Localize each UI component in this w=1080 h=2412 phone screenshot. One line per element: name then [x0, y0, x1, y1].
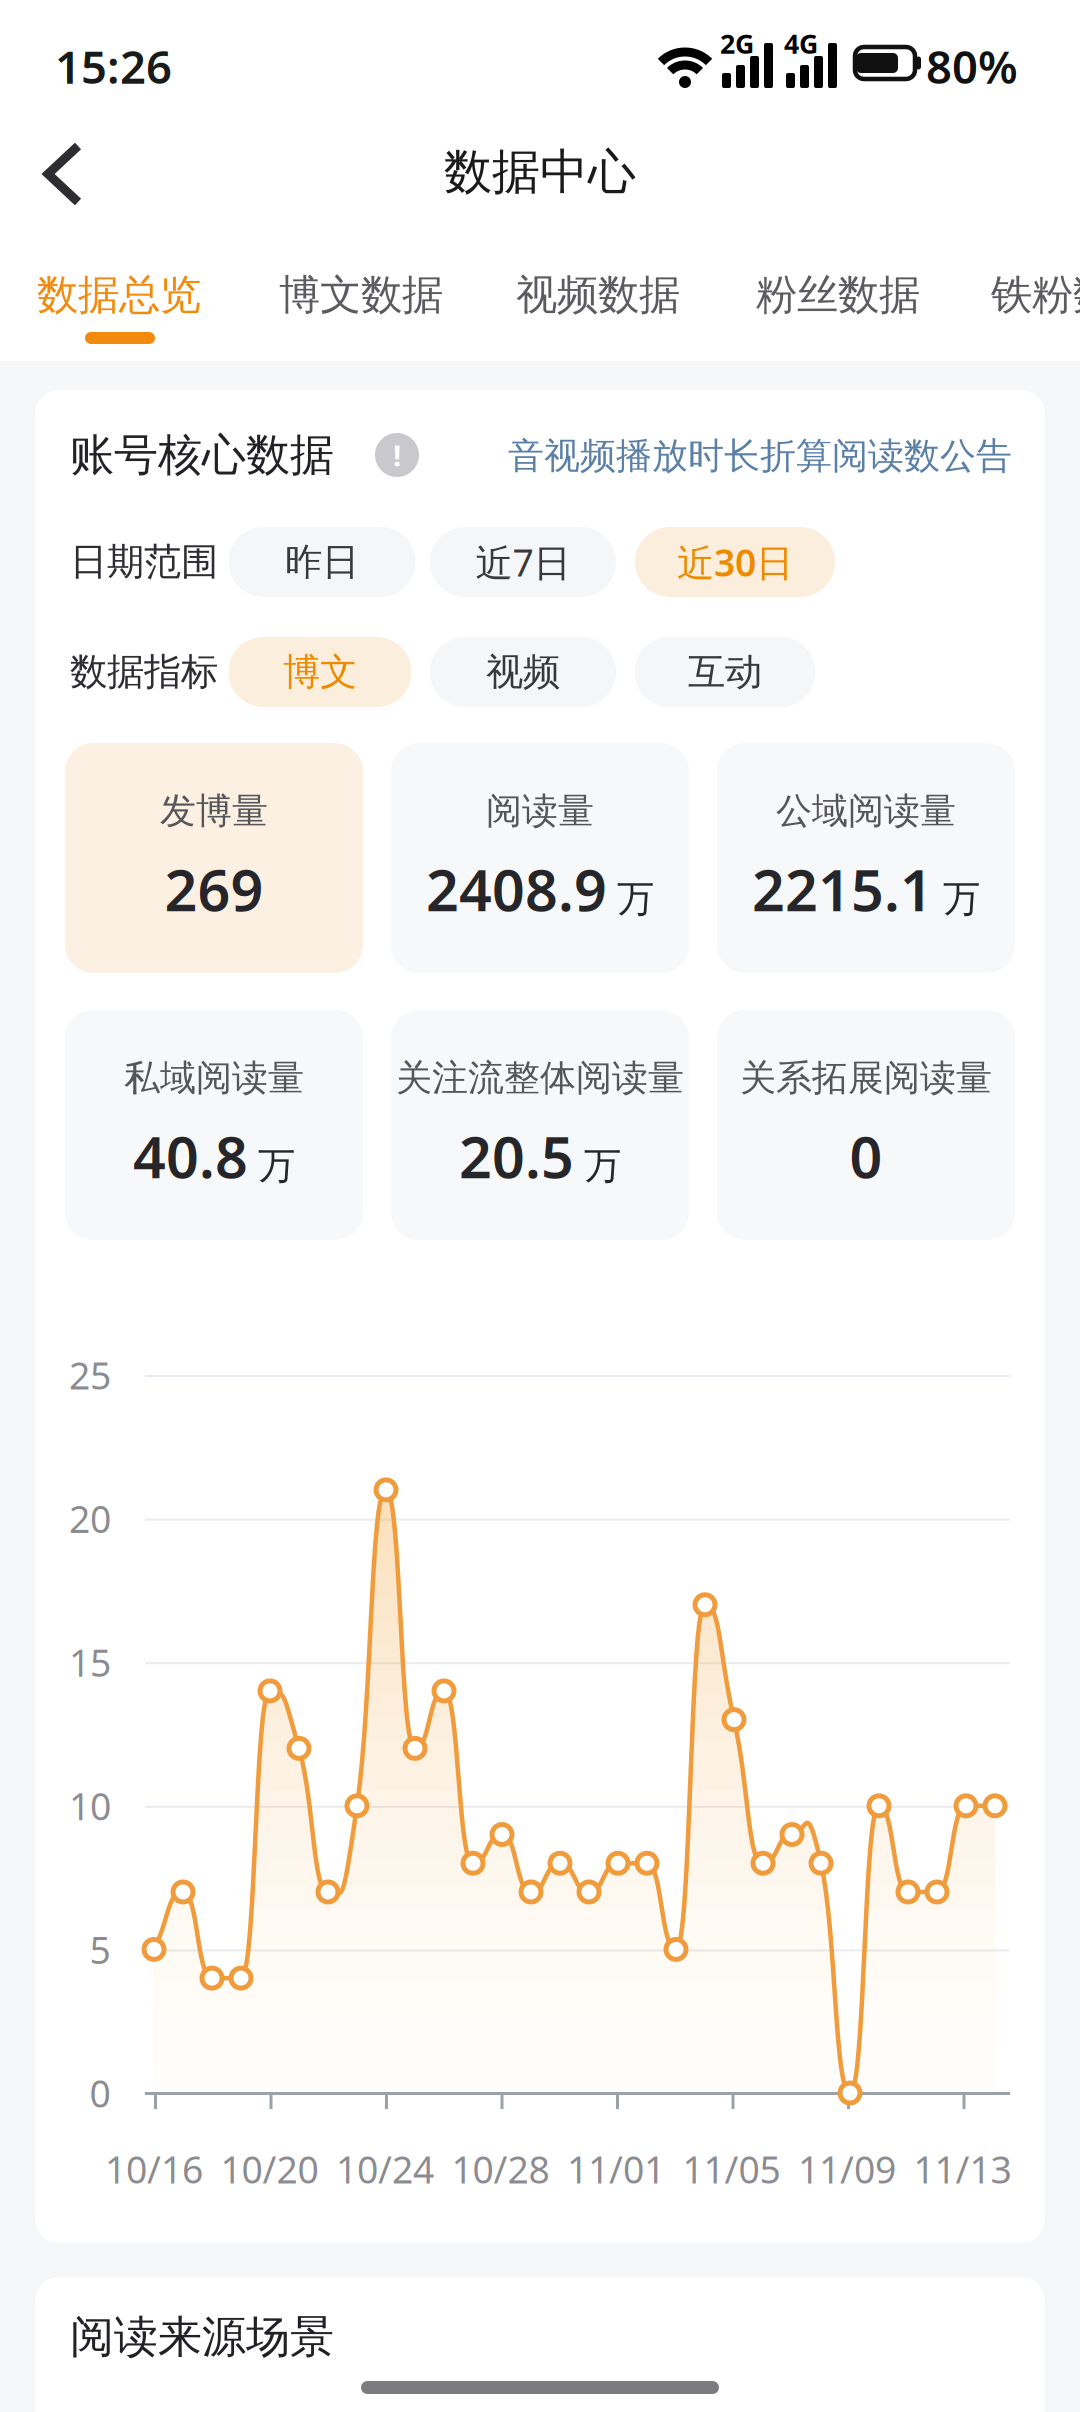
button[interactable]: 阅读量 [391, 743, 689, 973]
button[interactable]: 视频数据 [504, 248, 692, 342]
staticText: 万 [617, 876, 654, 922]
staticText: 关注流整体阅读量 [396, 1056, 684, 1100]
staticText: 博文数据 [279, 270, 443, 320]
staticText: 互动 [688, 649, 762, 695]
staticText: 10/20 [220, 2144, 318, 2194]
staticText: 5 [89, 1925, 110, 1974]
staticText: 4G [784, 26, 818, 61]
staticText: 公域阅读量 [776, 789, 956, 833]
button[interactable]: 铁粉数据 [979, 248, 1080, 342]
staticText: 0 [89, 2068, 110, 2118]
staticText: 视频数据 [516, 270, 680, 320]
staticText: 视频 [486, 649, 560, 695]
staticText: 昨日 [285, 539, 359, 585]
staticText: 粉丝数据 [756, 270, 920, 320]
staticText: 10 [69, 1781, 111, 1831]
button[interactable]: About this data [375, 433, 419, 477]
staticText: 账号核心数据 [70, 428, 334, 482]
staticText: 10/24 [336, 2144, 434, 2194]
button[interactable]: 博文数据 [267, 248, 455, 342]
staticText: 数据中心 [444, 142, 636, 201]
staticText: 20 [69, 1494, 111, 1543]
staticText: 2408.9 [426, 851, 607, 927]
staticText: 阅读量 [486, 789, 594, 833]
staticText: 25 [69, 1350, 111, 1400]
staticText: 2G [720, 26, 754, 61]
button[interactable]: 私域阅读量 [65, 1010, 363, 1240]
staticText: 15 [69, 1637, 111, 1687]
button[interactable]: 粉丝数据 [744, 248, 932, 342]
staticText: 铁粉数据 [991, 270, 1080, 320]
button[interactable]: 发博量 [65, 743, 363, 973]
button[interactable]: Back [30, 136, 96, 212]
staticText: 2215.1 [752, 851, 933, 927]
staticText: 269 [164, 851, 263, 927]
staticText: 近30日 [677, 537, 793, 587]
staticText: 10/28 [451, 2144, 549, 2194]
button[interactable]: 视频 [430, 637, 616, 707]
staticText: 数据总览 [37, 270, 201, 320]
button[interactable]: 近7日 [430, 527, 616, 597]
staticText: 音视频播放时长折算阅读数公告 [508, 434, 1012, 478]
button[interactable]: 关注流整体阅读量 [391, 1010, 689, 1240]
button[interactable]: 关系拓展阅读量 [717, 1010, 1015, 1240]
staticText: 万 [584, 1143, 621, 1189]
staticText: 15:26 [55, 36, 172, 96]
staticText: 11/09 [798, 2144, 896, 2194]
staticText: 关系拓展阅读量 [740, 1056, 992, 1100]
button[interactable]: 昨日 [228, 527, 415, 597]
button[interactable]: 数据总览 [25, 248, 213, 342]
staticText: ! [393, 435, 401, 474]
staticText: 私域阅读量 [124, 1056, 304, 1100]
staticText: 近7日 [475, 537, 570, 587]
staticText: 日期范围 [70, 539, 218, 585]
button[interactable]: 互动 [634, 637, 815, 707]
staticText: 11/01 [567, 2144, 665, 2194]
staticText: 万 [258, 1143, 295, 1189]
staticText: 11/05 [682, 2144, 780, 2194]
button[interactable]: 音视频播放时长折算阅读数公告 [508, 434, 1012, 478]
button[interactable]: 近30日 [635, 527, 835, 597]
staticText: 11/13 [913, 2144, 1011, 2194]
staticText: 40.8 [133, 1118, 248, 1194]
staticText: 阅读来源场景 [70, 2310, 334, 2364]
staticText: 博文 [283, 649, 357, 695]
button[interactable]: 公域阅读量 [717, 743, 1015, 973]
staticText: 0 [849, 1118, 882, 1194]
staticText: 数据指标 [70, 649, 218, 695]
staticText: 10/16 [105, 2144, 203, 2194]
staticText: 发博量 [160, 789, 268, 833]
staticText: 20.5 [459, 1118, 574, 1194]
staticText: 万 [943, 876, 980, 922]
button[interactable]: 博文 [228, 637, 411, 707]
staticText: 80% [926, 36, 1018, 96]
